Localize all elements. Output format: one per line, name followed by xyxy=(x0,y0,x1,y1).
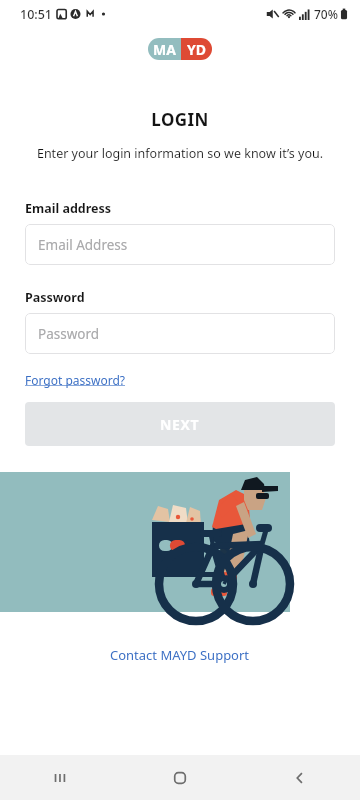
staticText: 70% xyxy=(314,6,338,22)
button[interactable]: Email Address xyxy=(25,224,335,265)
button[interactable]: NEXT xyxy=(25,402,335,446)
staticText: Password xyxy=(38,325,100,343)
staticText: Email Address xyxy=(38,236,128,254)
staticText: Enter your login information so we know … xyxy=(0,145,360,162)
staticText: MA xyxy=(153,40,176,59)
staticText: 10:51 xyxy=(20,6,53,23)
staticText: Forgot password? xyxy=(25,372,126,388)
button[interactable]: Recent apps xyxy=(0,755,120,800)
button[interactable]: Back xyxy=(240,755,360,800)
staticText: Contact MAYD Support xyxy=(110,646,250,664)
button[interactable]: Home xyxy=(120,755,240,800)
button[interactable]: Contact MAYD Support xyxy=(106,644,254,666)
button[interactable]: Forgot password? xyxy=(25,371,126,389)
button[interactable]: Password xyxy=(25,313,335,354)
staticText: Email address xyxy=(25,200,112,217)
staticText: LOGIN xyxy=(0,108,360,131)
staticText: YD xyxy=(187,40,207,59)
staticText: Password xyxy=(25,289,85,306)
staticText: NEXT xyxy=(160,415,200,434)
